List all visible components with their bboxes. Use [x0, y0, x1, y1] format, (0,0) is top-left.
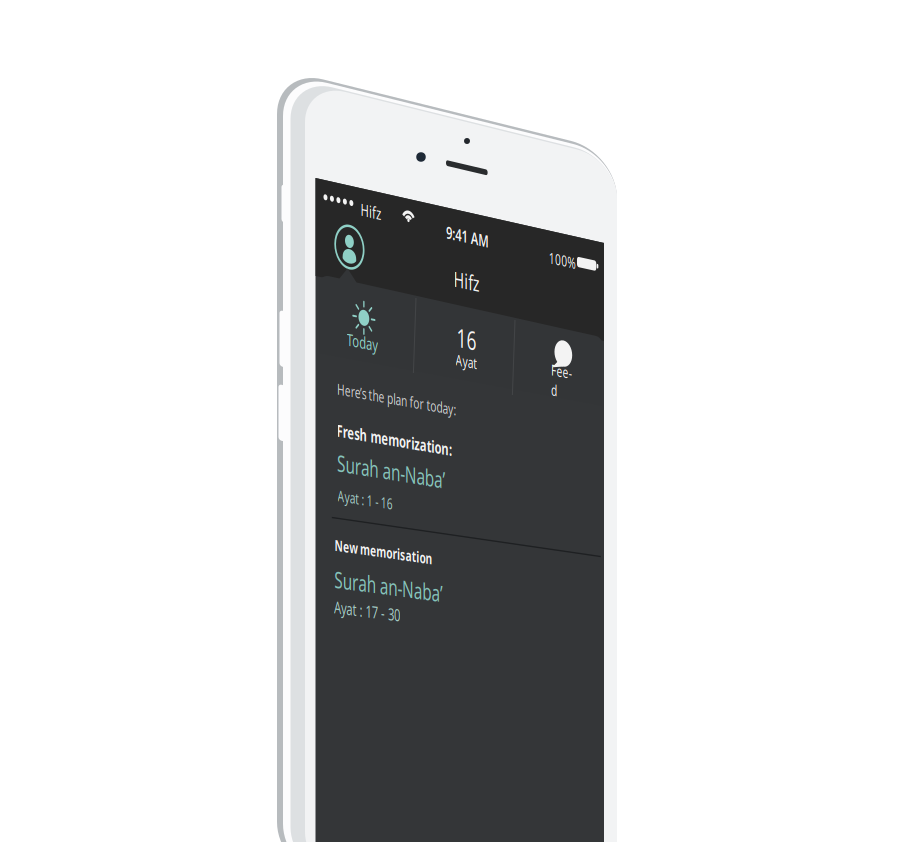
staticText: Surah an-Naba’: [337, 448, 478, 474]
staticText: 16: [456, 320, 482, 350]
staticText: Today: [347, 328, 387, 348]
staticText: Hifz: [360, 198, 387, 218]
staticText: 100%: [549, 247, 584, 265]
button[interactable]: 16: [0, 0, 907, 842]
staticText: New memorisation: [335, 535, 462, 553]
staticText: Ayat : 17 - 30: [334, 596, 420, 615]
button[interactable]: Profile: [0, 0, 907, 842]
staticText: Feed: [551, 361, 578, 396]
button[interactable]: Today: [0, 0, 907, 842]
button[interactable]: Fresh memorization:: [0, 0, 907, 842]
staticText: Here’s the plan for today:: [337, 378, 492, 396]
staticText: Fresh memorization:: [336, 419, 486, 439]
button[interactable]: Feed: [0, 0, 907, 842]
staticText: Hifz: [453, 264, 487, 289]
staticText: Ayat : 1 - 16: [337, 485, 409, 503]
staticText: 9:41 AM: [446, 221, 502, 240]
staticText: Ayat: [455, 349, 483, 367]
button[interactable]: New memorisation: [0, 0, 907, 842]
staticText: Surah an-Naba’: [334, 564, 475, 591]
